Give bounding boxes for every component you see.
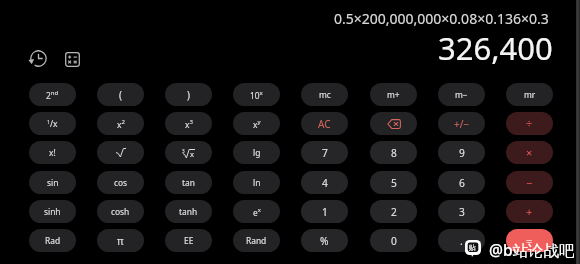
button[interactable]: m+ — [370, 83, 417, 106]
button[interactable]: Rad — [29, 229, 76, 252]
button[interactable]: % — [301, 229, 348, 252]
button[interactable]: − — [506, 171, 553, 194]
staticText: cos — [114, 177, 128, 188]
staticText: + — [526, 204, 533, 219]
button[interactable]: sinh — [29, 200, 76, 223]
button[interactable]: 9 — [438, 141, 485, 164]
staticText: 1 — [322, 205, 328, 219]
button[interactable]: History — [29, 49, 47, 67]
button[interactable]: ex — [233, 200, 280, 223]
button[interactable]: 2 — [370, 200, 417, 223]
staticText: xy — [253, 118, 261, 130]
button[interactable]: mc — [301, 83, 348, 106]
button[interactable]: tan — [165, 171, 212, 194]
staticText: @b站论战吧 — [489, 239, 575, 260]
button[interactable]: 1 — [301, 200, 348, 223]
staticText: tan — [182, 177, 195, 188]
staticText: Rand — [246, 235, 267, 246]
staticText: m+ — [387, 89, 400, 100]
button[interactable]: Backspace — [370, 112, 417, 135]
staticText: 5 — [391, 176, 397, 190]
button[interactable]: 4 — [301, 171, 348, 194]
button[interactable]: 6 — [438, 171, 485, 194]
button[interactable]: ln — [233, 171, 280, 194]
staticText: × — [526, 145, 533, 160]
staticText: x — [190, 149, 195, 159]
button[interactable]: cosh — [97, 200, 144, 223]
staticText: 9 — [459, 146, 465, 160]
button[interactable]: AC — [301, 112, 348, 135]
staticText: 2nd — [46, 89, 59, 101]
staticText: sinh — [44, 206, 61, 217]
button[interactable]: ( — [97, 83, 144, 106]
staticText: m− — [455, 89, 468, 100]
button[interactable]: . — [438, 229, 485, 252]
button[interactable]: xy — [233, 112, 280, 135]
button[interactable]: lg — [233, 141, 280, 164]
button[interactable]: x! — [29, 141, 76, 164]
button[interactable]: 2nd — [29, 83, 76, 106]
button[interactable]: sin — [29, 171, 76, 194]
staticText: 7 — [322, 146, 328, 160]
button[interactable]: Rand — [233, 229, 280, 252]
staticText: tanh — [179, 206, 198, 217]
button[interactable]: 7 — [301, 141, 348, 164]
button[interactable]: 10x — [233, 83, 280, 106]
staticText: Rad — [45, 235, 61, 246]
button[interactable]: 3 — [438, 200, 485, 223]
staticText: 贴 — [469, 243, 476, 252]
staticText: x2 — [117, 118, 125, 130]
staticText: 8 — [391, 146, 397, 160]
staticText: 1/x — [47, 118, 58, 129]
staticText: ( — [119, 88, 122, 102]
button[interactable]: + — [506, 200, 553, 223]
button[interactable]: +/− — [438, 112, 485, 135]
staticText: mc — [319, 89, 331, 100]
button[interactable]: × — [506, 141, 553, 164]
staticText: lg — [253, 147, 261, 158]
staticText: x3 — [185, 118, 193, 130]
button[interactable]: Scientific keypad — [64, 51, 80, 67]
button[interactable]: ) — [165, 83, 212, 106]
staticText: 3 — [459, 205, 465, 219]
button[interactable]: cos — [97, 171, 144, 194]
staticText: 0 — [391, 234, 397, 248]
button[interactable]: mr — [506, 83, 553, 106]
button[interactable]: π — [97, 229, 144, 252]
button[interactable]: 8 — [370, 141, 417, 164]
staticText: % — [320, 234, 329, 248]
button[interactable]: ÷ — [506, 112, 553, 135]
staticText: ) — [187, 88, 190, 102]
staticText: . — [460, 234, 463, 248]
staticText: sin — [47, 177, 59, 188]
staticText: − — [526, 175, 533, 190]
button[interactable]: m− — [438, 83, 485, 106]
staticText: AC — [318, 117, 331, 131]
button[interactable]: = — [506, 229, 553, 252]
button[interactable]: EE — [165, 229, 212, 252]
staticText: 0.5×200,000,000×0.08×0.136×0.3 — [334, 9, 549, 28]
button[interactable]: tanh — [165, 200, 212, 223]
staticText: mr — [524, 89, 536, 100]
staticText: 2 — [391, 205, 397, 219]
staticText: 6 — [459, 176, 465, 190]
staticText: +/− — [454, 117, 470, 131]
staticText: 4 — [322, 176, 328, 190]
staticText: x! — [49, 147, 56, 158]
staticText: 3 — [182, 148, 185, 154]
button[interactable]: 5 — [370, 171, 417, 194]
staticText: 10x — [250, 89, 263, 101]
staticText: EE — [184, 235, 194, 246]
staticText: ln — [253, 177, 261, 188]
staticText: ÷ — [526, 116, 533, 131]
button[interactable]: 0 — [370, 229, 417, 252]
button[interactable]: x3 — [165, 112, 212, 135]
staticText: π — [117, 234, 124, 248]
button[interactable]: Square root — [97, 141, 144, 164]
staticText: 326,400 — [438, 27, 553, 69]
button[interactable]: 1/x — [29, 112, 76, 135]
button[interactable]: x2 — [97, 112, 144, 135]
button[interactable]: Cube root of x — [165, 141, 212, 164]
staticText: ex — [253, 206, 261, 218]
staticText: = — [526, 233, 533, 248]
